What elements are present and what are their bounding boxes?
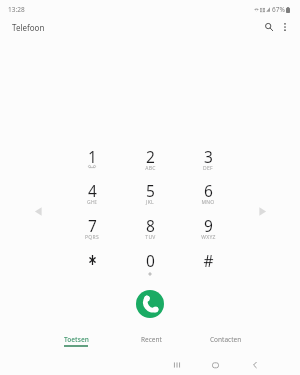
- button[interactable]: 1: [64, 141, 120, 175]
- button[interactable]: 7: [64, 210, 120, 244]
- staticText: Toetsen: [64, 335, 89, 344]
- button[interactable]: Home: [204, 354, 226, 375]
- staticText: DEF: [203, 165, 213, 172]
- button[interactable]: 8: [122, 210, 178, 244]
- staticText: GHI: [87, 199, 97, 206]
- staticText: 8: [146, 215, 155, 236]
- button[interactable]: 4: [64, 175, 120, 209]
- staticText: 13:28: [8, 5, 25, 14]
- button[interactable]: Contacten: [191, 331, 261, 353]
- button[interactable]: Recents: [166, 354, 188, 375]
- button[interactable]: Call: [136, 290, 164, 318]
- staticText: 7: [88, 215, 97, 236]
- staticText: Recent: [141, 335, 162, 344]
- staticText: MNO: [201, 199, 215, 206]
- button[interactable]: star: [64, 245, 120, 279]
- button[interactable]: 6: [180, 175, 236, 209]
- button[interactable]: 3: [180, 141, 236, 175]
- staticText: 0: [146, 250, 155, 271]
- staticText: 6: [204, 180, 213, 201]
- button[interactable]: Back: [244, 354, 266, 375]
- button[interactable]: More options: [274, 16, 296, 38]
- button[interactable]: 0: [122, 245, 178, 279]
- button[interactable]: Previous page: [31, 204, 45, 218]
- staticText: 2: [146, 146, 155, 167]
- staticText: 9: [204, 215, 213, 236]
- button[interactable]: Recent: [116, 331, 186, 353]
- button[interactable]: 9: [180, 210, 236, 244]
- button[interactable]: 2: [122, 141, 178, 175]
- staticText: #: [203, 250, 214, 271]
- button[interactable]: Next page: [255, 204, 269, 218]
- staticText: 4: [88, 180, 97, 201]
- button[interactable]: Search: [258, 16, 280, 38]
- staticText: JKL: [146, 199, 154, 206]
- staticText: 1: [88, 146, 97, 167]
- staticText: ABC: [145, 165, 156, 172]
- staticText: WXYZ: [201, 234, 216, 241]
- staticText: Contacten: [210, 335, 242, 344]
- staticText: TUV: [145, 234, 156, 241]
- staticText: 3: [204, 146, 213, 167]
- staticText: 67%: [272, 5, 285, 14]
- button[interactable]: Toetsen: [41, 331, 111, 353]
- staticText: 5: [146, 180, 155, 201]
- staticText: Telefoon: [12, 22, 45, 33]
- button[interactable]: pound: [180, 245, 236, 279]
- staticText: PQRS: [85, 234, 99, 241]
- button[interactable]: 5: [122, 175, 178, 209]
